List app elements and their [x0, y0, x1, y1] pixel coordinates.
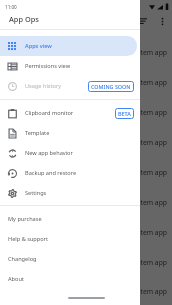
button[interactable]: Settings: [0, 183, 137, 203]
staticText: Clipboard monitor: [25, 109, 74, 117]
button[interactable]: Apps view: [0, 36, 137, 56]
button[interactable]: System app: [0, 277, 172, 305]
staticText: Template: [25, 129, 50, 137]
staticText: System app: [130, 48, 168, 57]
staticText: Changelog: [8, 255, 37, 263]
staticText: Help & support: [8, 235, 48, 243]
staticText: My purchase: [8, 215, 42, 223]
staticText: Permissions view: [25, 62, 71, 70]
staticText: System app: [130, 287, 168, 296]
button[interactable]: System app: [0, 97, 172, 127]
button[interactable]: New app behavior: [0, 143, 137, 163]
button[interactable]: Filter: [136, 14, 150, 28]
staticText: COMING SOON: [91, 83, 131, 90]
staticText: System app: [130, 108, 168, 117]
staticText: App Ops: [9, 14, 39, 24]
button[interactable]: Help & support: [0, 229, 140, 249]
staticText: System app: [130, 198, 168, 207]
button[interactable]: Permissions view: [0, 56, 137, 76]
staticText: Backup and restore: [25, 169, 77, 177]
button[interactable]: System app: [0, 37, 172, 67]
button[interactable]: System app: [0, 247, 172, 277]
staticText: 11:00: [5, 4, 17, 10]
button[interactable]: Usage history: [0, 76, 137, 96]
button[interactable]: My purchase: [0, 209, 140, 229]
staticText: System app: [130, 228, 168, 237]
button[interactable]: About: [0, 269, 140, 289]
button[interactable]: System app: [0, 157, 172, 187]
button[interactable]: System app: [0, 127, 172, 157]
button[interactable]: Changelog: [0, 249, 140, 269]
staticText: System app: [130, 258, 168, 267]
button[interactable]: System app: [0, 187, 172, 217]
staticText: System app: [130, 138, 168, 147]
staticText: System app: [130, 168, 168, 177]
staticText: About: [8, 275, 24, 283]
staticText: System app: [130, 78, 168, 87]
button[interactable]: System app: [0, 217, 172, 247]
staticText: Usage history: [25, 82, 62, 90]
staticText: Apps view: [25, 42, 52, 50]
staticText: Settings: [25, 189, 47, 197]
staticText: New app behavior: [25, 149, 73, 157]
button[interactable]: Template: [0, 123, 137, 143]
button[interactable]: Backup and restore: [0, 163, 137, 183]
button[interactable]: System app: [0, 67, 172, 97]
button[interactable]: More options: [155, 14, 169, 28]
button[interactable]: Clipboard monitor: [0, 103, 137, 123]
staticText: BETA: [118, 110, 131, 117]
